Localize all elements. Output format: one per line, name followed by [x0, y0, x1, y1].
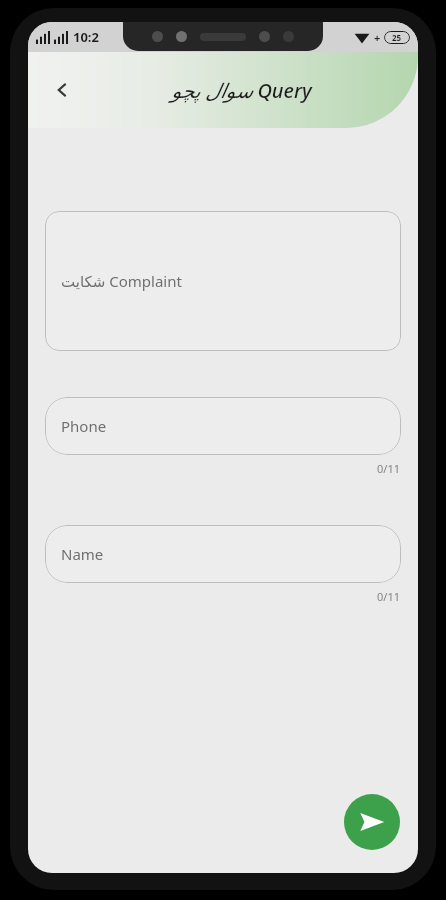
button[interactable]: Phone	[45, 397, 401, 455]
staticText: Name	[61, 544, 104, 564]
button[interactable]: Name	[45, 525, 401, 583]
staticText: شکایت Complaint	[61, 271, 182, 291]
button[interactable]: Send	[344, 794, 400, 850]
staticText: +	[374, 30, 381, 45]
staticText: 25	[392, 32, 402, 43]
button[interactable]: شکایت Complaint	[45, 211, 401, 351]
staticText: 0/11	[377, 461, 400, 476]
staticText: 10:2	[73, 28, 99, 46]
button[interactable]: Back	[42, 70, 82, 110]
staticText: سوال پچو Query	[171, 77, 312, 104]
staticText: Phone	[61, 416, 107, 436]
staticText: 0/11	[377, 589, 400, 604]
